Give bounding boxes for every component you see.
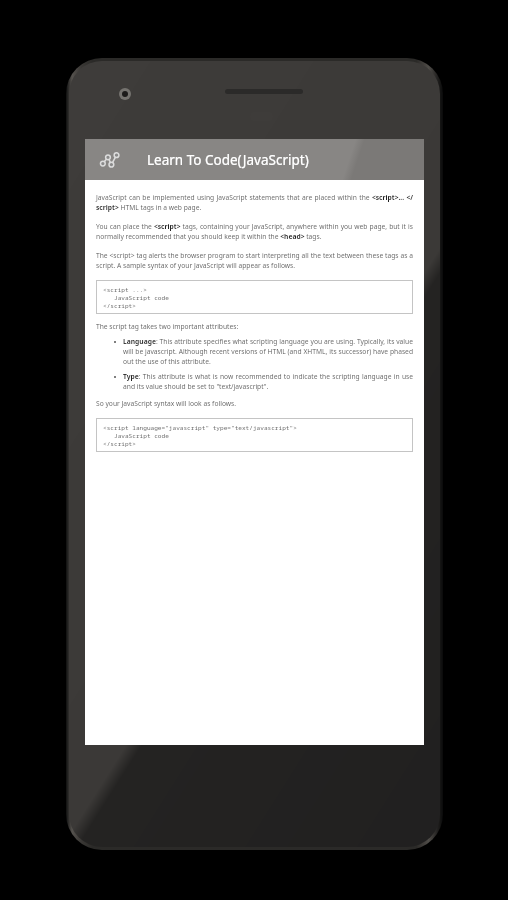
staticText: JavaScript can be implemented using Java… <box>96 193 413 212</box>
button[interactable]: Learn To Code(JavaScript) <box>147 151 309 169</box>
staticText: The script tag takes two important attri… <box>96 322 239 331</box>
staticText: <script language="javascript" type="text… <box>103 423 297 431</box>
staticText: </script> <box>103 301 136 309</box>
staticText: Type: This attribute is what is now reco… <box>123 372 413 391</box>
staticText: JavaScript code <box>103 431 169 439</box>
staticText: </script> <box>103 439 136 447</box>
button[interactable]: Navigation menu <box>93 144 125 176</box>
staticText: The <script> tag alerts the browser prog… <box>96 251 413 270</box>
staticText: JavaScript code <box>103 293 169 301</box>
staticText: <script ...> <box>103 285 147 293</box>
staticText: You can place the <script> tags, contain… <box>96 222 413 241</box>
staticText: Language: This attribute specifies what … <box>123 337 413 366</box>
staticText: So your JavaScript syntax will look as f… <box>96 399 237 408</box>
